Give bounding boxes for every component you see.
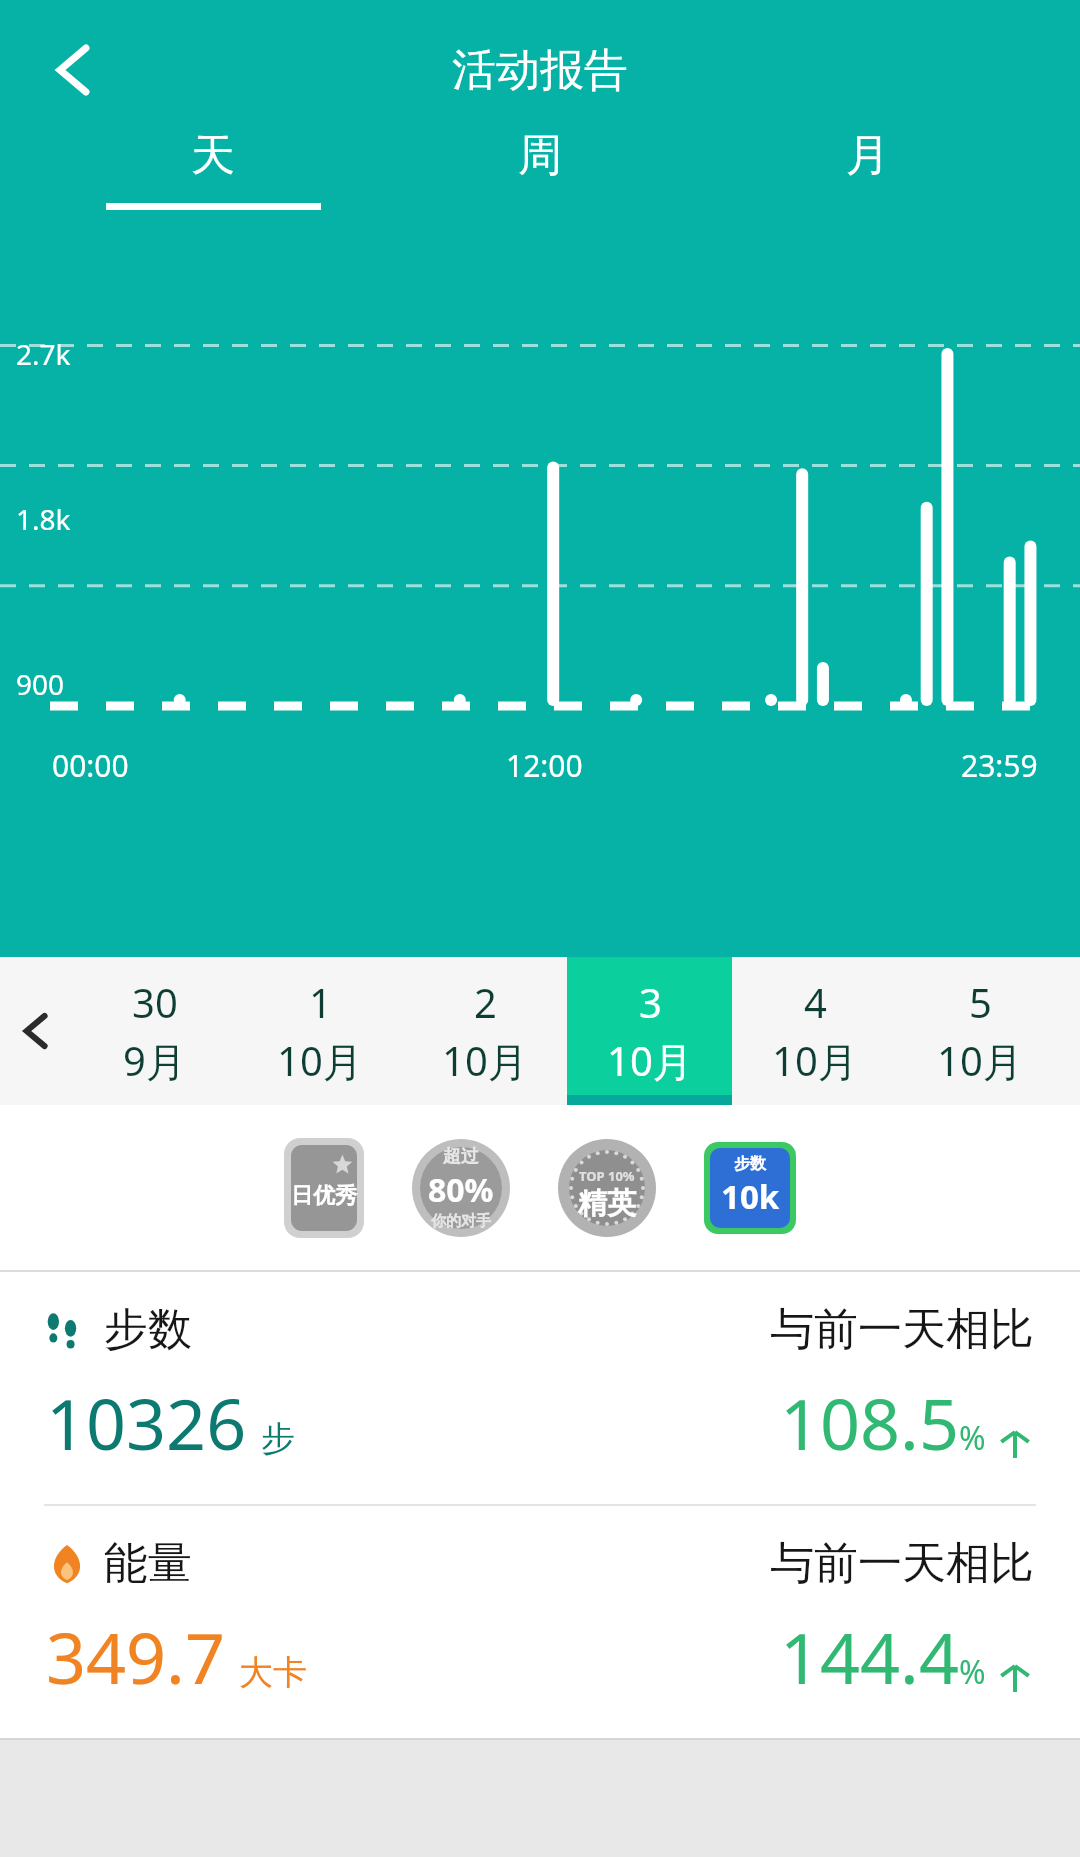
- staticText: 月: [846, 128, 890, 183]
- staticText: 步数: [734, 1154, 766, 1174]
- staticText: 23:59: [961, 745, 1038, 786]
- staticText: 10月: [607, 1033, 693, 1088]
- button[interactable]: 10k steps medal: [704, 1142, 796, 1234]
- staticText: 5: [969, 975, 992, 1029]
- staticText: 能量: [104, 1536, 192, 1591]
- button[interactable]: 超过80% medal: [412, 1139, 510, 1237]
- button[interactable]: 1: [237, 957, 402, 1105]
- staticText: 4: [804, 975, 827, 1029]
- staticText: 12:00: [506, 745, 583, 786]
- staticText: 00:00: [52, 745, 129, 786]
- staticText: 与前一天相比: [770, 1536, 1034, 1591]
- staticText: 天: [191, 128, 235, 183]
- button[interactable]: 4: [732, 957, 897, 1105]
- staticText: 活动报告: [452, 43, 628, 98]
- button[interactable]: 日优秀 medal: [284, 1138, 364, 1238]
- staticText: 10326: [46, 1375, 247, 1470]
- button[interactable]: 3: [567, 957, 732, 1105]
- staticText: 80%: [428, 1168, 494, 1212]
- button[interactable]: 精英 medal: [558, 1139, 656, 1237]
- staticText: 10月: [277, 1033, 363, 1088]
- staticText: %: [959, 1650, 986, 1694]
- staticText: 144.4: [780, 1609, 959, 1704]
- staticText: 步数: [104, 1302, 192, 1357]
- staticText: 大卡: [239, 1651, 307, 1694]
- button[interactable]: 2: [402, 957, 567, 1105]
- button[interactable]: 步数: [0, 1272, 1080, 1504]
- staticText: 与前一天相比: [770, 1302, 1034, 1357]
- button[interactable]: Back: [26, 22, 122, 118]
- staticText: 1.8k: [16, 500, 71, 538]
- button[interactable]: 30: [72, 957, 237, 1105]
- button[interactable]: Previous days: [0, 957, 72, 1105]
- staticText: 108.5: [780, 1375, 959, 1470]
- staticText: 周: [518, 128, 562, 183]
- staticText: 900: [16, 665, 65, 703]
- button[interactable]: 天: [98, 122, 328, 216]
- staticText: 9月: [123, 1033, 186, 1088]
- button[interactable]: 周: [425, 122, 655, 216]
- staticText: 10月: [442, 1033, 528, 1088]
- staticText: 2.7k: [16, 335, 71, 373]
- staticText: 30: [132, 975, 178, 1029]
- button[interactable]: 月: [753, 122, 983, 216]
- button[interactable]: 能量: [0, 1506, 1080, 1738]
- staticText: 10月: [937, 1033, 1023, 1088]
- staticText: 步: [261, 1417, 295, 1460]
- staticText: 349.7: [46, 1609, 225, 1704]
- staticText: 10k: [721, 1174, 780, 1219]
- staticText: 3: [639, 975, 662, 1029]
- staticText: 10月: [772, 1033, 858, 1088]
- staticText: TOP 10%: [579, 1167, 635, 1185]
- staticText: 日优秀: [291, 1182, 357, 1210]
- staticText: 1: [309, 975, 332, 1029]
- staticText: 你的对手: [431, 1212, 491, 1231]
- staticText: 2: [474, 975, 497, 1029]
- button[interactable]: 5: [897, 957, 1062, 1105]
- staticText: %: [959, 1416, 986, 1460]
- staticText: 精英: [578, 1185, 636, 1222]
- staticText: 超过: [443, 1145, 479, 1168]
